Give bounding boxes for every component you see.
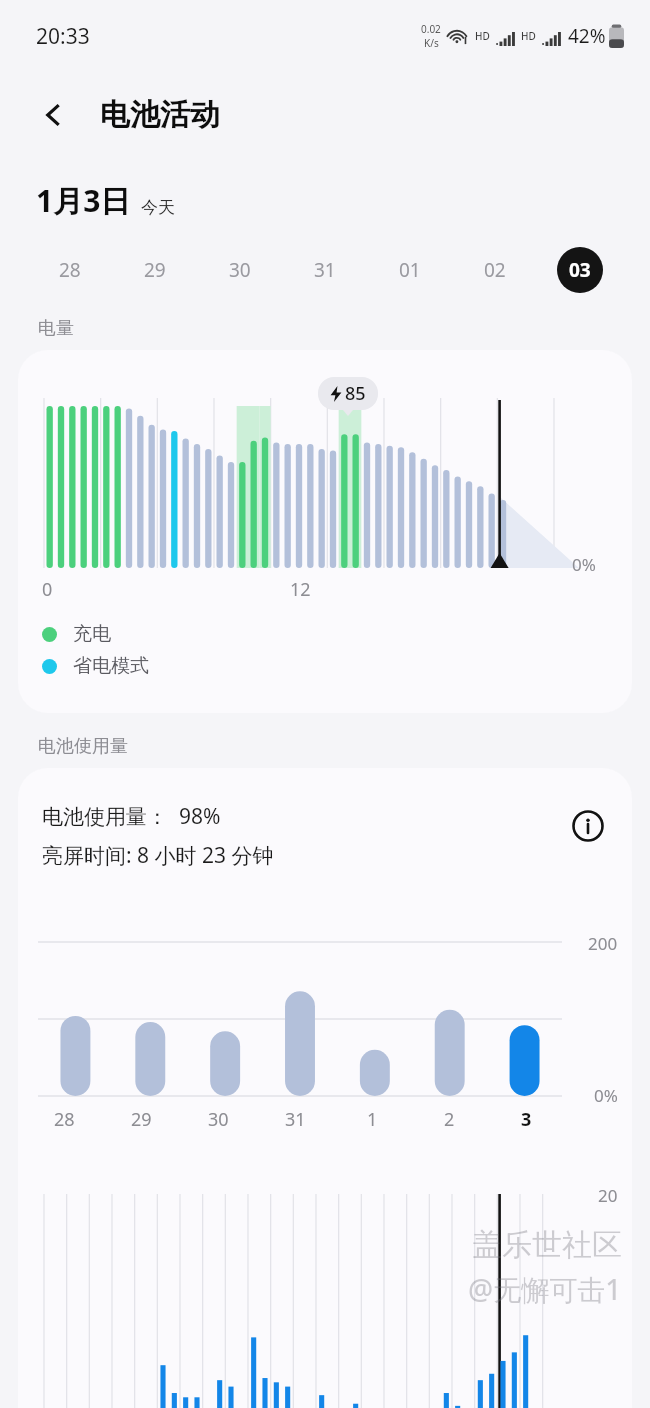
staticText: 0.02 (421, 22, 441, 36)
button[interactable]: 电池使用量： 98% (18, 768, 632, 1408)
staticText: 盖乐世社区 (472, 1226, 622, 1264)
button[interactable]: 03 (537, 241, 622, 299)
staticText: 03 (569, 257, 591, 283)
button[interactable]: 31 (282, 241, 367, 299)
staticText: 42% (568, 23, 606, 49)
staticText: 2 (444, 1107, 455, 1132)
staticText: 200 (588, 932, 618, 955)
staticText: HD (521, 29, 536, 43)
staticText: 亮屏时间: 8 小时 23 分钟 (42, 841, 274, 870)
button[interactable]: 0% (18, 350, 632, 713)
staticText: 0% (594, 1084, 618, 1107)
staticText: HD (475, 29, 490, 43)
staticText: 电量 (38, 317, 74, 340)
staticText: 30 (208, 1107, 229, 1132)
staticText: 电池活动 (100, 96, 220, 134)
button[interactable]: 29 (112, 241, 197, 299)
button[interactable]: Info (566, 804, 610, 848)
button[interactable]: 28 (28, 241, 112, 299)
staticText: 电池使用量 (38, 735, 128, 758)
staticText: 20:33 (36, 22, 90, 51)
staticText: 01 (399, 257, 421, 283)
staticText: 1月3日 (36, 180, 131, 221)
staticText: 29 (144, 257, 166, 283)
staticText: K/s (424, 36, 439, 50)
staticText: 31 (285, 1107, 306, 1132)
staticText: 0% (572, 553, 596, 576)
staticText: @无懈可击1 (468, 1270, 622, 1308)
staticText: 电池使用量： 98% (42, 802, 221, 831)
button[interactable]: 01 (367, 241, 452, 299)
staticText: 20 (598, 1184, 618, 1207)
staticText: 3 (521, 1107, 532, 1132)
staticText: 28 (59, 257, 81, 283)
staticText: 今天 (141, 197, 175, 218)
button[interactable]: Back (30, 91, 78, 139)
button[interactable]: 02 (452, 241, 537, 299)
staticText: 30 (229, 257, 251, 283)
staticText: 28 (54, 1107, 75, 1132)
staticText: 12 (290, 577, 311, 602)
staticText: 85 (345, 381, 366, 406)
staticText: 29 (131, 1107, 152, 1132)
button[interactable]: 30 (197, 241, 282, 299)
staticText: 省电模式 (73, 654, 149, 678)
staticText: 0 (42, 577, 53, 602)
staticText: 充电 (73, 622, 111, 646)
staticText: 02 (484, 257, 506, 283)
staticText: 31 (314, 257, 336, 283)
staticText: 1 (367, 1107, 378, 1132)
